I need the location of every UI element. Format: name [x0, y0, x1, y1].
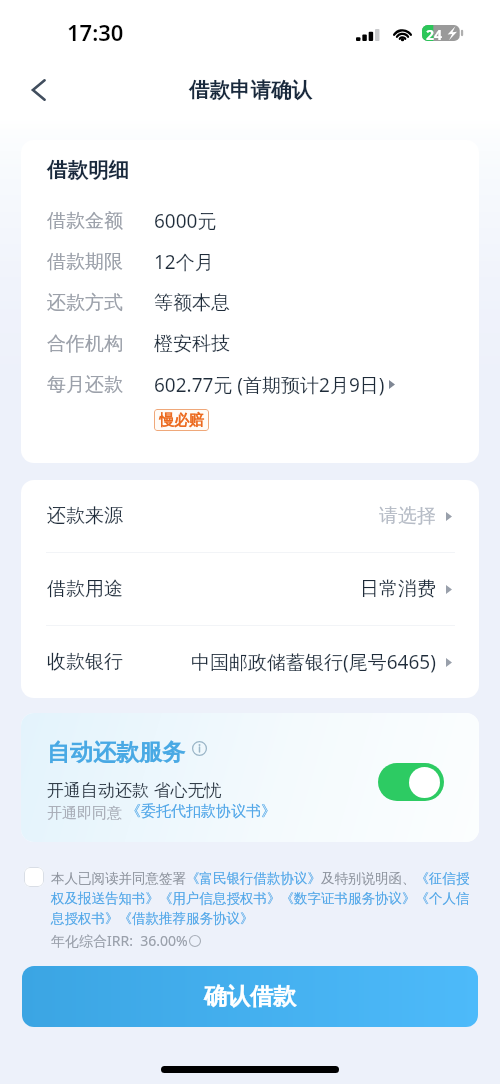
staticText: 602.77元 (首期预计2月9日) — [154, 372, 385, 398]
staticText: 借款金额 — [47, 209, 154, 233]
staticText: 还款方式 — [47, 291, 154, 315]
button[interactable]: Back — [20, 71, 58, 109]
button[interactable]: 确认借款 — [22, 966, 478, 1027]
staticText: 合作机构 — [47, 332, 154, 356]
staticText: 日常消费 — [360, 577, 436, 601]
button[interactable]: 借款用途 — [21, 553, 479, 625]
staticText: 借款明细 — [47, 157, 129, 183]
staticText: 借款期限 — [47, 250, 154, 274]
staticText: 还款来源 — [47, 504, 123, 528]
button[interactable]: 还款来源 — [21, 480, 479, 552]
button[interactable]: Agree checkbox — [24, 867, 44, 887]
staticText: 确认借款 — [204, 982, 296, 1011]
staticText: 收款银行 — [47, 650, 123, 674]
staticText: 24 — [426, 25, 443, 41]
staticText: 请选择 — [379, 504, 436, 528]
staticText: 中国邮政储蓄银行(尾号6465) — [191, 649, 436, 675]
staticText: 慢必赔 — [159, 411, 204, 430]
staticText: 等额本息 — [154, 291, 230, 315]
staticText: 借款用途 — [47, 577, 123, 601]
staticText: 开通即同意 — [47, 802, 126, 822]
staticText: 每月还款 — [47, 373, 154, 397]
staticText: 年化综合IRR: 36.00% — [51, 931, 188, 950]
staticText: 17:30 — [67, 17, 124, 47]
button[interactable]: 收款银行 — [21, 626, 479, 698]
button[interactable]: 《委托代扣款协议书》 — [126, 802, 276, 821]
button[interactable]: 本人已阅读并同意签署《富民银行借款协议》及特别说明函、《征信授权及报送告知书》《… — [51, 870, 480, 927]
staticText: 6000元 — [154, 208, 217, 234]
staticText: 借款申请确认 — [189, 77, 312, 103]
staticText: 自动还款服务 — [47, 738, 185, 767]
staticText: 橙安科技 — [154, 332, 230, 356]
staticText: 开通自动还款 省心无忧 — [47, 778, 222, 801]
staticText: 12个月 — [154, 249, 214, 275]
button[interactable]: Toggle auto repayment — [378, 763, 444, 801]
